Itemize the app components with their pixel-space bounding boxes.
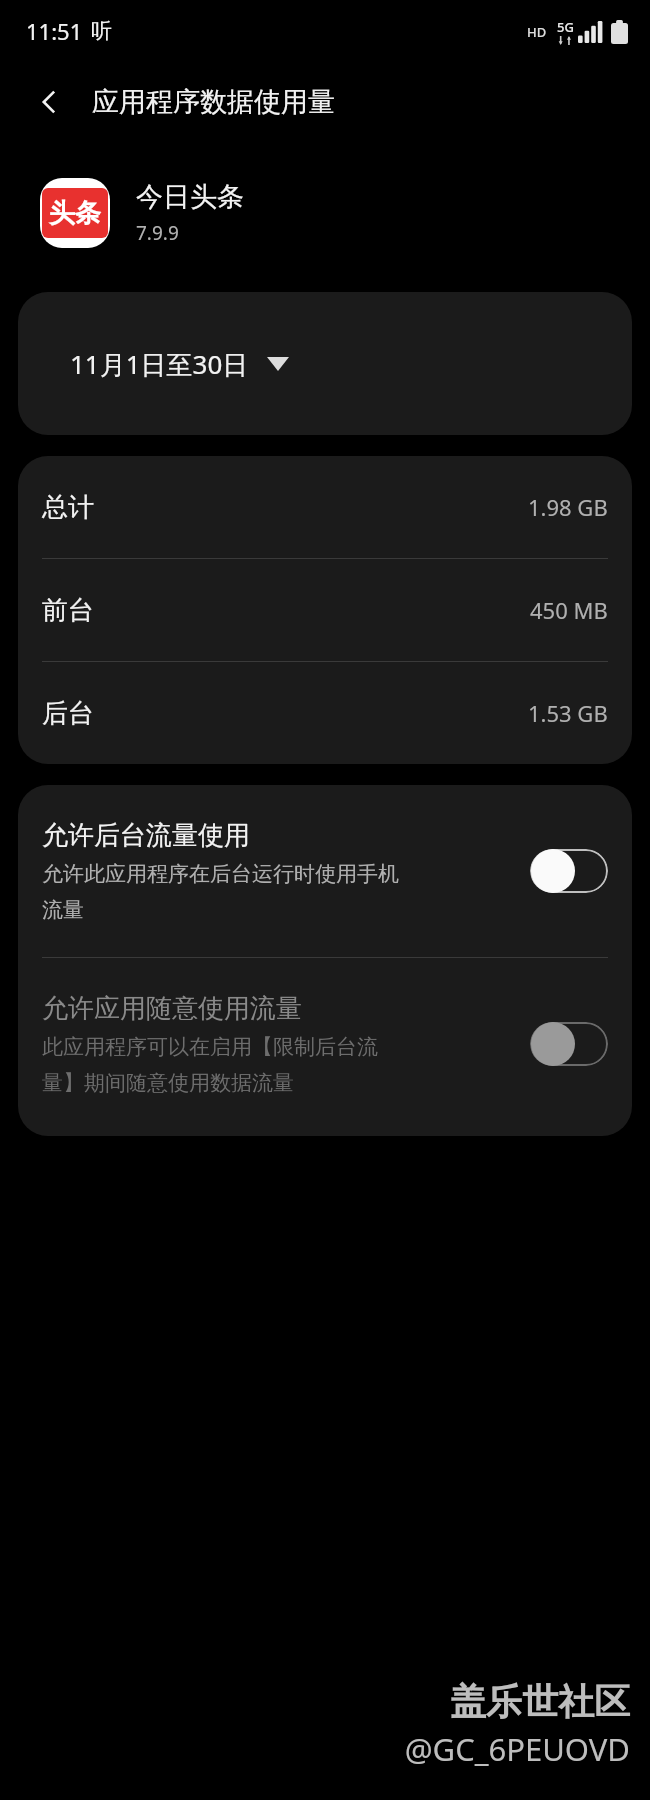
button[interactable]: Back [22, 74, 78, 130]
staticText: 11月1日至30日 [70, 346, 249, 382]
button[interactable]: 允许后台流量使用 [18, 785, 632, 957]
button[interactable]: Toggle [530, 1021, 608, 1067]
staticText: 头条 [49, 197, 101, 230]
staticText: 听 [91, 18, 112, 44]
button[interactable]: 11月1日至30日 [18, 292, 632, 435]
staticText: 此应用程序可以在启用【限制后台流 量】期间随意使用数据流量 [42, 1034, 378, 1096]
staticText: @GC_6PEUOVD [404, 1728, 630, 1770]
staticText: 允许此应用程序在后台运行时使用手机 流量 [42, 861, 399, 923]
staticText: 1.98 GB [528, 492, 608, 522]
staticText: 应用程序数据使用量 [92, 85, 335, 119]
staticText: HD [527, 23, 547, 41]
button[interactable]: Toggle [530, 848, 608, 894]
staticText: 前台 [42, 594, 94, 627]
staticText: 1.53 GB [528, 698, 608, 728]
staticText: 允许应用随意使用流量 [42, 992, 302, 1025]
staticText: 今日头条 [136, 180, 244, 214]
button[interactable]: 允许应用随意使用流量 [18, 958, 632, 1136]
staticText: 总计 [42, 491, 94, 524]
staticText: 5G [557, 18, 574, 36]
staticText: 7.9.9 [136, 220, 179, 246]
button[interactable]: 后台 [18, 662, 632, 764]
staticText: 后台 [42, 697, 94, 730]
staticText: 允许后台流量使用 [42, 819, 250, 852]
staticText: 450 MB [530, 595, 608, 625]
button[interactable]: 总计 [18, 456, 632, 558]
staticText: 11:51 [26, 16, 83, 46]
button[interactable]: 前台 [18, 559, 632, 661]
staticText: 盖乐世社区 [450, 1679, 630, 1724]
